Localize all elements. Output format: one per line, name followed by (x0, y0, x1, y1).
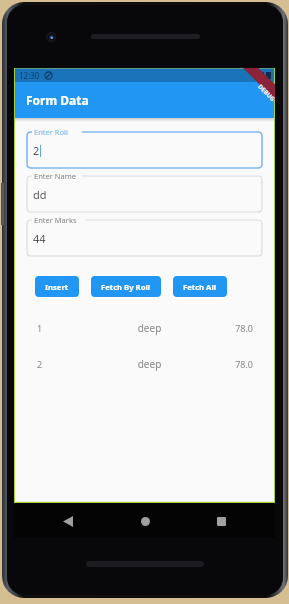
staticText: dd (33, 187, 47, 202)
staticText: 2 (37, 358, 97, 370)
staticText: Form Data (26, 92, 89, 108)
button[interactable]: Enter Marks (27, 220, 262, 256)
button[interactable]: 2 (27, 357, 262, 371)
staticText: Insert (45, 282, 69, 292)
button[interactable]: Recent apps (198, 508, 244, 534)
button[interactable]: Fetch By Roll (91, 276, 161, 297)
staticText: deep (97, 321, 202, 335)
staticText: Enter Marks (34, 215, 77, 225)
staticText: Enter Name (34, 171, 76, 181)
staticText: 44 (33, 231, 46, 246)
staticText: Fetch All (183, 282, 217, 292)
button[interactable]: Back (45, 508, 91, 534)
button[interactable]: Enter Name (27, 176, 262, 212)
button[interactable]: Insert (35, 276, 79, 297)
button[interactable]: Fetch All (173, 276, 227, 297)
staticText: 2 (33, 143, 40, 158)
staticText: 1 (37, 322, 97, 334)
button[interactable]: Enter Roll (27, 132, 262, 168)
staticText: deep (97, 357, 202, 371)
staticText: DEBUG (256, 83, 277, 103)
staticText: 78.0 (202, 322, 253, 334)
staticText: Enter Roll (34, 127, 68, 137)
button[interactable]: 1 (27, 321, 262, 335)
button[interactable]: Home (122, 508, 168, 534)
staticText: Fetch By Roll (101, 282, 151, 292)
staticText: 12:30 (19, 70, 40, 81)
staticText: 78.0 (202, 358, 253, 370)
